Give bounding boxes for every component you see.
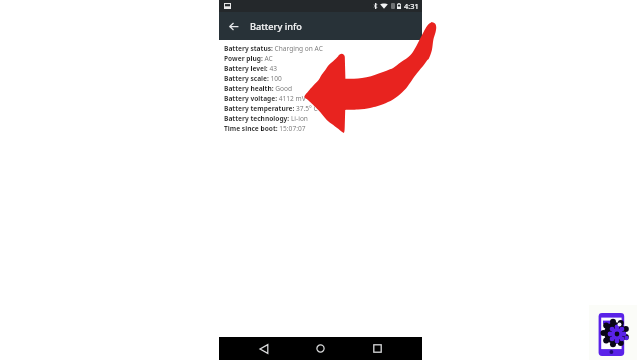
staticText: Battery temperature: 37.5° C (224, 104, 318, 114)
staticText: Battery technology: Li-ion (224, 114, 308, 124)
button[interactable]: Recent apps (369, 340, 386, 357)
button[interactable]: Home (312, 340, 329, 357)
staticText: Battery level: 43 (224, 64, 277, 74)
button[interactable]: Back (225, 18, 241, 34)
staticText: Battery health: Good (224, 84, 293, 94)
staticText: Battery info (250, 20, 302, 33)
staticText: Battery status: Charging on AC (224, 44, 323, 54)
button[interactable]: Back (255, 340, 272, 357)
button[interactable]: App logo (589, 305, 637, 360)
staticText: Power plug: AC (224, 54, 273, 64)
staticText: Battery scale: 100 (224, 74, 282, 84)
staticText: Battery voltage: 4112 mV (224, 94, 306, 104)
staticText: 4:31 (404, 1, 419, 11)
staticText: Time since boot: 15:07:07 (224, 124, 306, 134)
